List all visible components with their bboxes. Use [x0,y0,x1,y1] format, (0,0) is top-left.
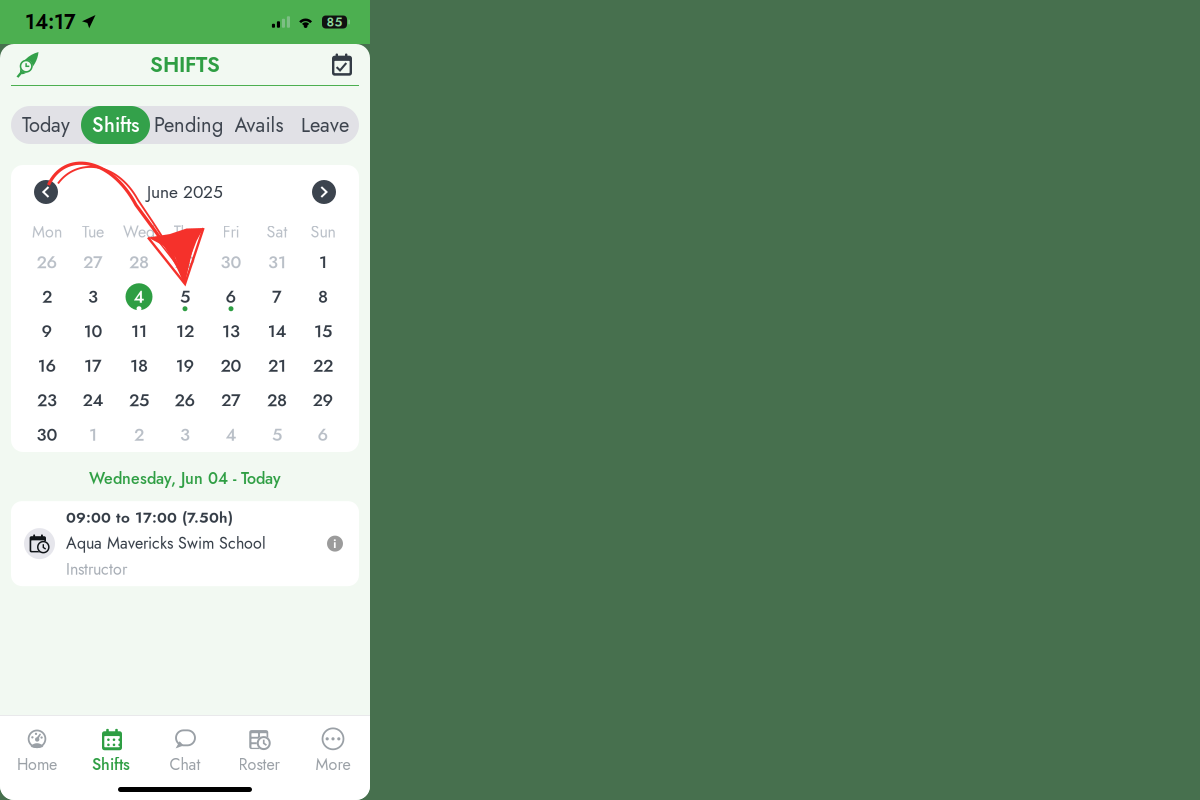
staticText: 5 [180,284,190,309]
staticText: Pending [154,110,223,139]
staticText: 14 [267,319,286,344]
staticText: Aqua Mavericks Swim School [66,532,266,555]
staticText: 26 [174,388,195,413]
staticText: 17 [84,353,102,378]
button[interactable]: Avails [227,106,291,144]
staticText: 19 [175,353,194,378]
button[interactable]: Previous month [33,179,59,205]
staticText: 18 [130,353,148,378]
staticText: Roster [238,753,279,776]
staticText: 26 [36,250,57,275]
staticText: 31 [268,250,286,275]
staticText: Avails [234,110,283,139]
staticText: Wed [123,220,155,243]
staticText: 11 [131,319,147,344]
staticText: Wednesday, Jun 04 - Today [89,467,281,490]
staticText: 24 [82,388,103,413]
button[interactable]: Shifts [74,729,148,774]
staticText: 4 [225,422,236,447]
staticText: Home [17,753,57,776]
button[interactable]: Home [11,47,45,81]
button[interactable]: 09:00 to 17:00 (7.50h) [11,501,359,586]
staticText: 25 [129,388,149,413]
staticText: 9 [41,319,52,344]
staticText: 27 [221,388,241,413]
button[interactable]: My shifts [325,47,359,81]
staticText: Instructor [66,558,127,581]
staticText: 10 [83,319,102,344]
staticText: 21 [268,353,286,378]
staticText: 12 [176,319,194,344]
staticText: 85 [326,13,342,31]
staticText: 3 [180,422,190,447]
button[interactable]: Roster [222,729,296,774]
staticText: 30 [36,422,57,447]
button[interactable]: Chat [148,729,222,774]
staticText: 30 [220,250,241,275]
staticText: 29 [312,388,333,413]
staticText: 23 [37,388,57,413]
staticText: June 2025 [147,179,223,204]
staticText: Shifts [92,110,139,139]
button[interactable]: Home [0,729,74,774]
staticText: 6 [225,284,236,309]
staticText: 15 [314,319,332,344]
staticText: SHIFTS [150,49,220,80]
staticText: 13 [222,319,240,344]
staticText: 3 [88,284,98,309]
staticText: Leave [301,110,349,139]
staticText: 5 [272,422,282,447]
staticText: 20 [220,353,241,378]
button[interactable]: More [296,729,370,774]
staticText: 6 [317,422,328,447]
staticText: 29 [174,250,195,275]
staticText: 1 [89,422,97,447]
staticText: 16 [37,353,56,378]
staticText: 4 [133,284,144,309]
button[interactable]: Shifts [81,106,150,144]
staticText: i [333,534,337,553]
staticText: More [315,753,350,776]
staticText: 28 [129,250,149,275]
staticText: 2 [134,422,144,447]
button[interactable]: Today [11,106,81,144]
button[interactable]: Leave [291,106,359,144]
staticText: Today [22,110,70,139]
staticText: 28 [267,388,287,413]
staticText: 09:00 to 17:00 (7.50h) [66,506,233,529]
staticText: 1 [319,250,327,275]
staticText: Thu [173,220,196,243]
button[interactable]: Next month [311,179,337,205]
staticText: Tue [82,220,104,243]
staticText: 8 [318,284,328,309]
staticText: Chat [169,753,200,776]
staticText: Sun [310,220,335,243]
button[interactable]: Pending [150,106,227,144]
staticText: 22 [313,353,333,378]
staticText: 7 [272,284,282,309]
staticText: Fri [222,220,239,243]
staticText: Mon [32,220,62,243]
staticText: Shifts [92,753,130,776]
staticText: Sat [266,220,287,243]
staticText: 14:17 [25,7,76,36]
staticText: 27 [83,250,103,275]
staticText: 2 [42,284,52,309]
